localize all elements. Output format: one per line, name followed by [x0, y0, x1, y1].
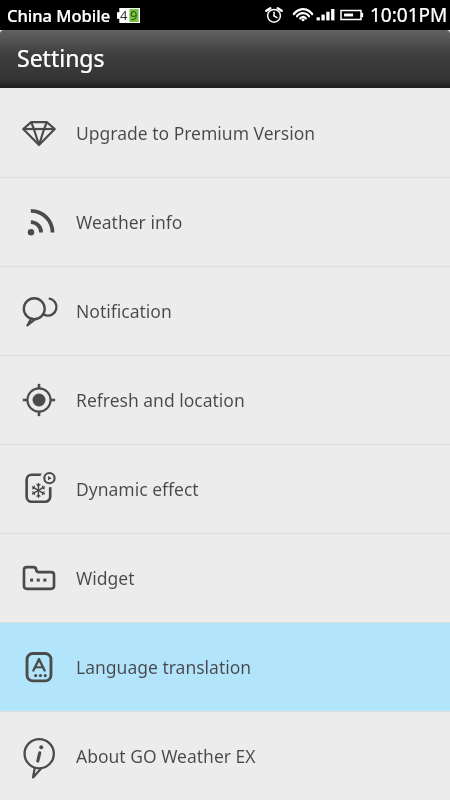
staticText: Notification: [76, 299, 172, 323]
button[interactable]: Notification: [0, 267, 450, 355]
staticText: About GO Weather EX: [76, 744, 256, 768]
staticText: Weather info: [76, 210, 183, 234]
other: Weather info: [0, 178, 76, 266]
other: Notification: [0, 267, 76, 355]
button[interactable]: Upgrade to Premium Version: [0, 88, 450, 177]
staticText: Upgrade to Premium Version: [76, 121, 316, 145]
staticText: Widget: [76, 566, 135, 590]
other: Refresh and location: [0, 356, 76, 444]
staticText: China Mobile: [7, 4, 111, 26]
staticText: 9: [130, 6, 138, 24]
button[interactable]: Widget: [0, 534, 450, 622]
staticText: Refresh and location: [76, 388, 245, 412]
button[interactable]: About GO Weather EX: [0, 712, 450, 800]
other: Upgrade to Premium Version: [0, 88, 76, 177]
button[interactable]: Weather info: [0, 178, 450, 266]
staticText: 10:01PM: [370, 2, 448, 28]
staticText: 4: [120, 6, 128, 24]
button[interactable]: Dynamic effect: [0, 445, 450, 533]
other: Widget: [0, 534, 76, 622]
staticText: Dynamic effect: [76, 477, 199, 501]
other: About GO Weather EX: [0, 712, 76, 800]
staticText: Settings: [17, 42, 105, 73]
button[interactable]: Refresh and location: [0, 356, 450, 444]
other: Language translation: [0, 623, 76, 711]
other: Dynamic effect: [0, 445, 76, 533]
button[interactable]: Language translation: [0, 623, 450, 711]
staticText: Language translation: [76, 655, 252, 679]
